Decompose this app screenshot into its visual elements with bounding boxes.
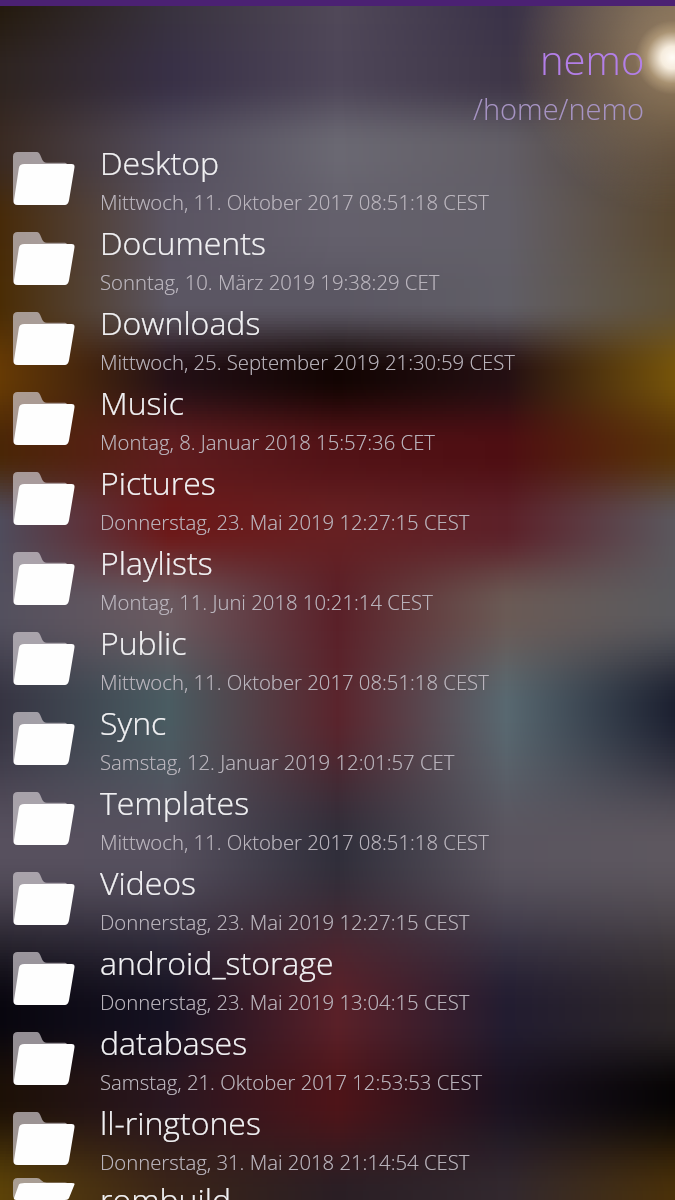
staticText: Donnerstag, 23. Mai 2019 12:27:15 CEST — [100, 508, 470, 536]
staticText: Mittwoch, 11. Oktober 2017 08:51:18 CEST — [100, 668, 489, 696]
staticText: Samstag, 12. Januar 2019 12:01:57 CET — [100, 748, 455, 776]
staticText: Samstag, 21. Oktober 2017 12:53:53 CEST — [100, 1068, 483, 1096]
button[interactable]: android_storage — [0, 938, 675, 1018]
button[interactable]: databases — [0, 1018, 675, 1098]
staticText: Sonntag, 10. März 2019 19:38:29 CET — [100, 268, 440, 296]
staticText: databases — [100, 1021, 248, 1065]
button[interactable]: Downloads — [0, 298, 675, 378]
staticText: ll-ringtones — [100, 1101, 261, 1145]
button[interactable]: Music — [0, 378, 675, 458]
button[interactable]: Documents — [0, 218, 675, 298]
staticText: Mittwoch, 25. September 2019 21:30:59 CE… — [100, 348, 515, 376]
button[interactable]: rombuild — [0, 1178, 675, 1200]
staticText: Public — [100, 621, 187, 665]
button[interactable]: Playlists — [0, 538, 675, 618]
button[interactable]: Videos — [0, 858, 675, 938]
button[interactable]: nemo — [0, 0, 675, 138]
staticText: Videos — [100, 861, 196, 905]
button[interactable]: ll-ringtones — [0, 1098, 675, 1178]
staticText: Montag, 8. Januar 2018 15:57:36 CET — [100, 428, 435, 456]
button[interactable]: Sync — [0, 698, 675, 778]
staticText: /home/nemo — [473, 89, 645, 128]
button[interactable]: Public — [0, 618, 675, 698]
staticText: Mittwoch, 11. Oktober 2017 08:51:18 CEST — [100, 188, 489, 216]
staticText: Playlists — [100, 541, 213, 585]
staticText: Donnerstag, 23. Mai 2019 12:27:15 CEST — [100, 908, 470, 936]
staticText: Donnerstag, 31. Mai 2018 21:14:54 CEST — [100, 1148, 470, 1176]
button[interactable]: Desktop — [0, 138, 675, 218]
staticText: Documents — [100, 221, 266, 265]
button[interactable]: Templates — [0, 778, 675, 858]
staticText: Downloads — [100, 301, 261, 345]
staticText: rombuild — [100, 1178, 231, 1200]
staticText: Pictures — [100, 461, 216, 505]
staticText: android_storage — [100, 941, 334, 985]
staticText: Sync — [100, 701, 167, 745]
staticText: Donnerstag, 23. Mai 2019 13:04:15 CEST — [100, 988, 470, 1016]
staticText: nemo — [540, 32, 645, 86]
staticText: Desktop — [100, 141, 220, 185]
staticText: Mittwoch, 11. Oktober 2017 08:51:18 CEST — [100, 828, 489, 856]
staticText: Music — [100, 381, 184, 425]
button[interactable]: Pictures — [0, 458, 675, 538]
staticText: Templates — [100, 781, 250, 825]
staticText: Montag, 11. Juni 2018 10:21:14 CEST — [100, 588, 433, 616]
